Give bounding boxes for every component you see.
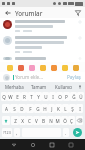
button[interactable]: D <box>18 104 26 113</box>
button[interactable]: Ü <box>77 92 84 101</box>
button[interactable]: Like <box>78 20 82 24</box>
button[interactable]: Backspace <box>76 116 83 125</box>
button[interactable]: Emoji <box>6 64 13 71</box>
button[interactable]: G <box>34 104 41 113</box>
button[interactable]: R <box>21 92 28 101</box>
staticText: F <box>29 106 32 112</box>
button[interactable]: Merhaba <box>2 82 26 91</box>
button[interactable]: Like <box>0 18 85 34</box>
button[interactable]: A <box>2 104 10 113</box>
staticText: G <box>36 106 40 112</box>
button[interactable]: N <box>47 116 54 125</box>
button[interactable]: E <box>14 92 21 101</box>
staticText: Ç <box>70 118 73 124</box>
staticText: Q <box>2 94 6 100</box>
button[interactable]: U <box>42 92 49 101</box>
button[interactable]: Yorum ekle... <box>15 74 66 80</box>
button[interactable]: H <box>41 104 48 113</box>
button[interactable]: Emoji <box>72 64 79 71</box>
staticText: B <box>42 118 45 124</box>
button[interactable]: Z <box>11 116 19 125</box>
staticText: Ü <box>79 94 83 100</box>
button[interactable]: F <box>26 104 34 113</box>
staticText: W <box>8 94 13 100</box>
button[interactable]: L <box>62 104 69 113</box>
button[interactable]: Voice input <box>76 82 83 91</box>
staticText: Yorum ekle... <box>15 74 43 80</box>
button[interactable]: Emoji <box>61 64 68 71</box>
button[interactable]: Ç <box>68 116 75 125</box>
staticText: D <box>20 106 24 112</box>
staticText: R <box>23 94 26 100</box>
button[interactable]: Paylaş <box>66 74 82 80</box>
button[interactable]: Kullanıcı <box>51 82 76 91</box>
button[interactable]: Ğ <box>70 92 77 101</box>
button[interactable]: Emoji <box>39 64 46 71</box>
button[interactable]: K <box>55 104 62 113</box>
button[interactable]: Recent apps <box>47 140 57 150</box>
button[interactable]: Home <box>28 140 38 150</box>
button[interactable]: Emoji <box>50 64 57 71</box>
button[interactable]: S <box>10 104 18 113</box>
button[interactable]: P <box>63 92 70 101</box>
staticText: O <box>58 94 62 100</box>
button[interactable]: B <box>40 116 47 125</box>
button[interactable]: Back <box>3 8 12 17</box>
staticText: P <box>65 94 68 100</box>
staticText: N <box>49 118 53 124</box>
staticText: C <box>28 118 31 124</box>
staticText: M <box>55 118 60 124</box>
button[interactable]: Back <box>9 140 19 150</box>
staticText: A <box>5 106 8 112</box>
staticText: H <box>43 106 47 112</box>
staticText: Tamam <box>31 84 47 90</box>
staticText: V <box>35 118 38 124</box>
button[interactable]: Period <box>63 128 69 137</box>
staticText: J <box>51 106 53 112</box>
staticText: I <box>52 94 54 100</box>
button[interactable]: Filter <box>73 8 82 17</box>
button[interactable]: Ö <box>61 116 68 125</box>
button[interactable]: O <box>56 92 63 101</box>
button[interactable]: Like <box>78 57 82 60</box>
staticText: ?123 <box>3 130 11 135</box>
staticText: E <box>16 94 19 100</box>
button[interactable]: Q <box>1 92 7 101</box>
button[interactable]: Send <box>73 128 82 137</box>
button[interactable]: J <box>48 104 55 113</box>
button[interactable]: Emoji <box>17 64 24 71</box>
staticText: Y <box>37 94 40 100</box>
button[interactable]: I <box>49 92 56 101</box>
staticText: Merhaba <box>5 84 24 90</box>
staticText: T <box>30 94 33 100</box>
button[interactable]: V <box>33 116 40 125</box>
staticText: U <box>44 94 48 100</box>
button[interactable]: Emoji <box>28 64 35 71</box>
button[interactable]: Ş <box>69 104 76 113</box>
button[interactable]: X <box>19 116 26 125</box>
button[interactable]: T <box>28 92 35 101</box>
button[interactable]: M <box>54 116 61 125</box>
button[interactable]: C <box>26 116 33 125</box>
staticText: Z <box>14 118 17 124</box>
staticText: S <box>13 106 16 112</box>
button[interactable]: Switch keyboard <box>66 140 76 150</box>
button[interactable]: Like <box>0 34 85 55</box>
staticText: Yorumlar <box>15 9 43 17</box>
staticText: L <box>64 106 67 112</box>
button[interactable]: W <box>7 92 14 101</box>
staticText: I <box>79 106 81 112</box>
staticText: K <box>57 106 60 112</box>
staticText: Kullanıcı <box>55 84 73 90</box>
button[interactable]: ?123 <box>2 128 12 137</box>
button[interactable]: Tamam <box>26 82 51 91</box>
button[interactable]: Like <box>78 36 82 40</box>
button[interactable]: Comma <box>14 128 20 137</box>
staticText: Ş <box>71 106 74 112</box>
button[interactable]: Like <box>0 55 85 62</box>
staticText: Ö <box>63 118 67 124</box>
button[interactable]: I <box>76 104 83 113</box>
button[interactable]: Y <box>35 92 42 101</box>
button[interactable]: Shift <box>2 116 10 125</box>
